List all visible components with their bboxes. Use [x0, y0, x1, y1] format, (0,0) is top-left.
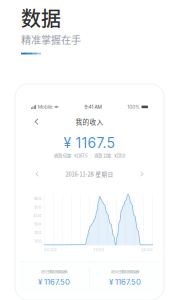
- button[interactable]: Next day: [137, 170, 147, 178]
- staticText: 400: [33, 213, 42, 218]
- staticText: 9:41 AM: [84, 104, 101, 110]
- staticText: 24:00: [141, 247, 153, 252]
- staticText: ¥ 1167.50: [38, 277, 70, 287]
- staticText: 600: [34, 196, 42, 201]
- staticText: 100: [34, 239, 42, 243]
- staticText: |: [90, 152, 91, 159]
- staticText: 500: [34, 205, 42, 209]
- staticText: 退款 12笔: [94, 152, 111, 159]
- staticText: 200: [34, 230, 42, 235]
- staticText: 300: [34, 222, 42, 226]
- staticText: 我的收入: [75, 117, 103, 126]
- staticText: 2016-11-28 星期日: [65, 170, 113, 178]
- button[interactable]: Previous day: [32, 170, 42, 178]
- staticText: 近7日累积消费金额: [41, 269, 67, 274]
- staticText: ¥1167.5: [74, 152, 87, 159]
- staticText: 100%: [127, 104, 140, 110]
- staticText: 12:00: [93, 247, 104, 252]
- staticText: 精准掌握在手: [21, 32, 81, 47]
- button[interactable]: 近30日累积消费金额: [90, 262, 160, 294]
- staticText: ¥220.0: [114, 152, 125, 159]
- staticText: 00:00: [44, 247, 57, 252]
- button[interactable]: Back: [30, 116, 43, 127]
- staticText: ¥ 1167.50: [109, 277, 141, 287]
- staticText: 收款 62笔: [54, 152, 71, 159]
- staticText: ¥ 1167.5: [63, 134, 115, 151]
- staticText: Mobile: [38, 104, 53, 110]
- staticText: 近30日累积消费金额: [111, 269, 139, 274]
- staticText: 数据: [21, 3, 61, 32]
- button[interactable]: 近7日累积消费金额: [19, 262, 89, 294]
